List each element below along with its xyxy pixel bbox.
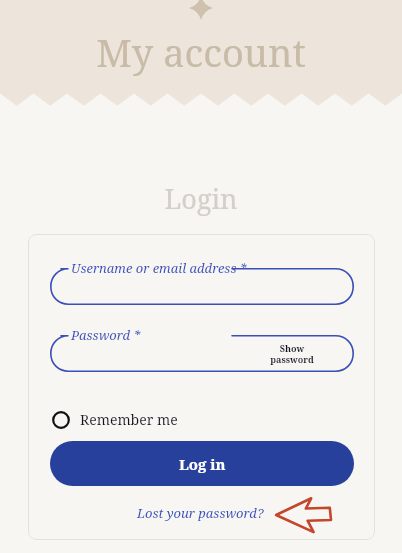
staticText: Lost your password? [137, 504, 264, 522]
staticText: Remember me [80, 410, 178, 429]
button[interactable] [50, 268, 354, 305]
staticText: Log in [179, 454, 226, 474]
button[interactable] [50, 335, 354, 372]
staticText: Password * [71, 326, 140, 344]
other: Arrow pointing to lost password link [274, 496, 334, 534]
staticText: Username or email address * [71, 259, 247, 277]
button[interactable]: Lost your password? [133, 502, 268, 524]
staticText: Show password [270, 342, 314, 365]
staticText: Login [0, 180, 402, 217]
button[interactable]: Remember me [50, 406, 180, 433]
button[interactable]: Log in [50, 441, 354, 486]
button[interactable]: Show password [268, 340, 316, 367]
staticText: My account [96, 26, 306, 78]
